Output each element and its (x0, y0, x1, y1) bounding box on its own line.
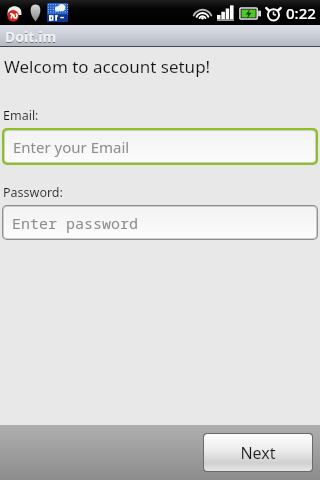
staticText: Doit.im (5, 28, 57, 47)
staticText: Email: (3, 107, 39, 124)
staticText: Enter your Email (13, 137, 130, 157)
staticText: Doit.im (5, 27, 57, 46)
staticText: Next (240, 442, 276, 464)
staticText: Password: (3, 184, 63, 201)
staticText: Welcom to account setup! (4, 55, 211, 78)
button[interactable]: Enter your Email (2, 128, 318, 165)
button[interactable]: Enter password (2, 205, 318, 240)
button[interactable]: Next (203, 433, 313, 472)
staticText: 0:22 (286, 3, 316, 23)
staticText: Enter password (12, 213, 139, 233)
